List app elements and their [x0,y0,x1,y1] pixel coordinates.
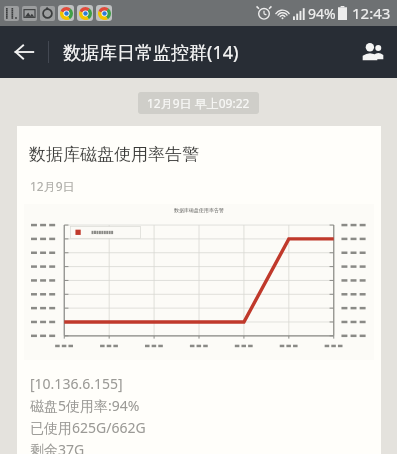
staticText: 12月9日 早上09:22 [147,95,250,111]
button[interactable]: 数据库磁盘使用率告警 [17,126,381,454]
button[interactable]: Group members [349,28,397,76]
staticText: [10.136.6.155] [30,374,123,393]
staticText: 12:43 [352,3,391,23]
button[interactable]: Back [0,28,48,76]
staticText: 数据库磁盘使用率告警 [174,207,224,213]
staticText: 数据库日常监控群(14) [63,40,239,65]
staticText: 剩余37G [30,440,85,454]
staticText: 94% [308,4,336,23]
staticText: 12月9日 [30,178,75,194]
staticText: 已使用625G/662G [30,418,146,437]
staticText: 数据库磁盘使用率告警 [29,144,199,165]
staticText: 磁盘5使用率:94% [30,396,140,415]
